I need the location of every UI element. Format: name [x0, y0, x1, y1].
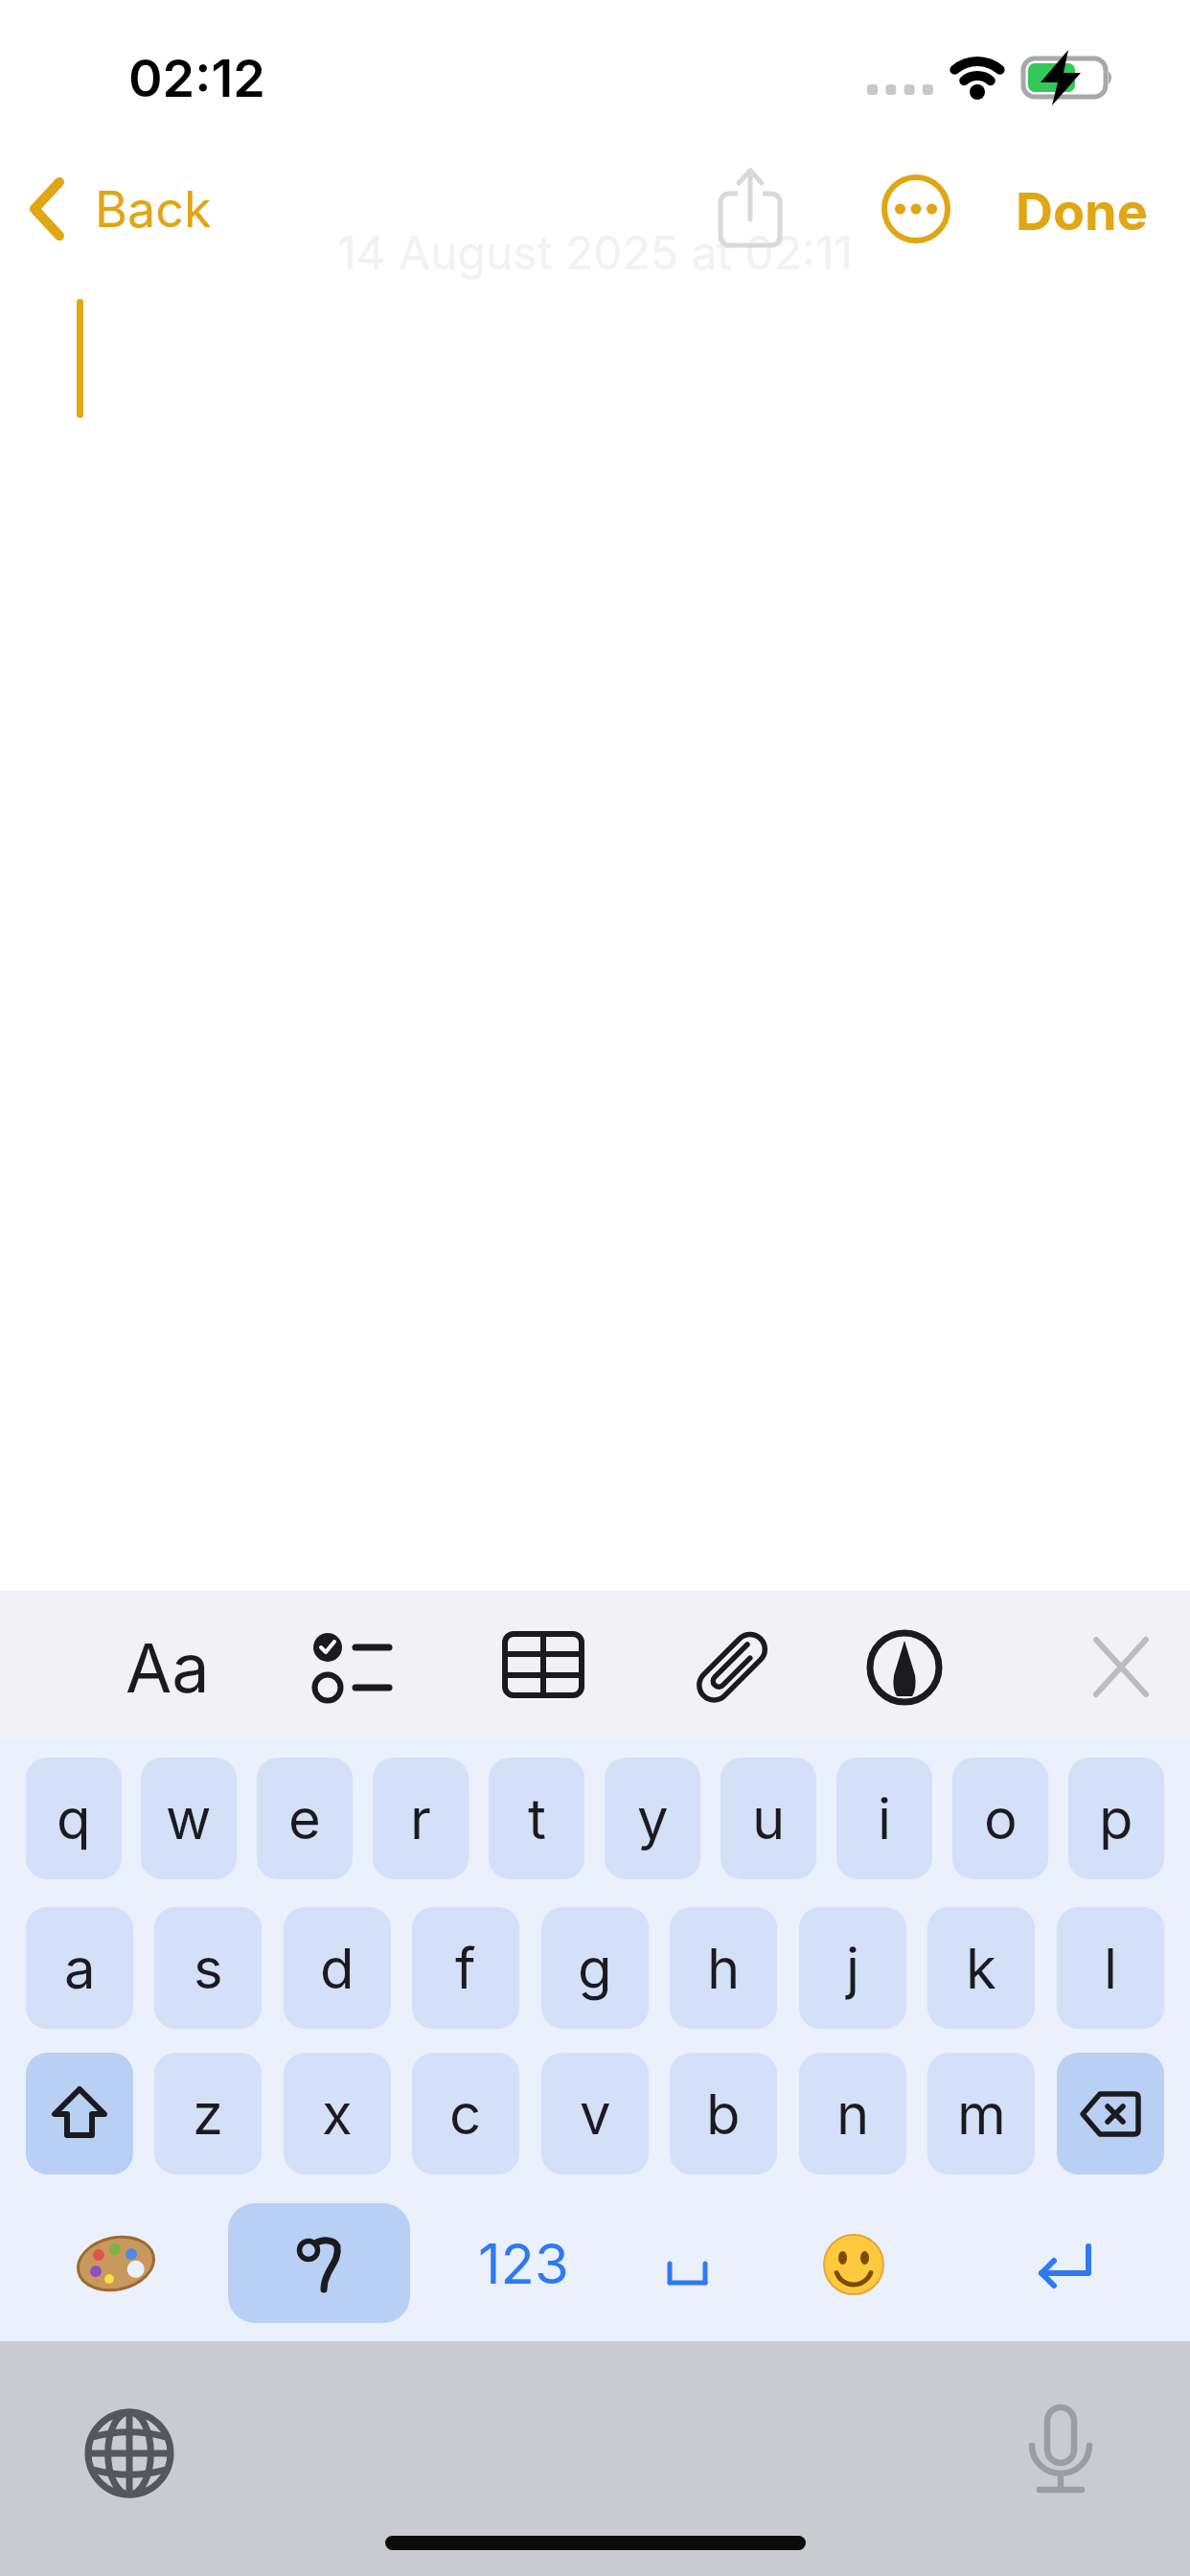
button[interactable]: [1016, 2227, 1115, 2302]
button[interactable]: [1057, 2053, 1164, 2174]
staticText: w: [166, 1785, 212, 1852]
staticText: f: [455, 1935, 476, 2002]
staticText: d: [320, 1935, 355, 2002]
button[interactable]: n: [799, 2053, 906, 2174]
button[interactable]: a: [26, 1907, 133, 2029]
button[interactable]: e: [257, 1758, 353, 1879]
staticText: k: [966, 1935, 996, 2002]
staticText: o: [984, 1785, 1018, 1852]
button[interactable]: m: [927, 2053, 1035, 2174]
staticText: q: [57, 1785, 91, 1852]
button[interactable]: Aa: [105, 1620, 230, 1715]
staticText: z: [193, 2081, 224, 2148]
button[interactable]: [26, 2053, 133, 2174]
button[interactable]: [75, 2231, 159, 2296]
staticText: s: [194, 1935, 223, 2002]
button[interactable]: i: [836, 1758, 932, 1879]
button[interactable]: w: [141, 1758, 237, 1879]
button[interactable]: [688, 1624, 774, 1711]
staticText: Done: [1016, 180, 1148, 242]
staticText: h: [707, 1935, 741, 2002]
button[interactable]: [1077, 1629, 1163, 1706]
button[interactable]: h: [670, 1907, 777, 2029]
button[interactable]: [1012, 2398, 1108, 2497]
staticText: y: [637, 1785, 669, 1852]
button[interactable]: [713, 165, 790, 253]
button[interactable]: y: [605, 1758, 700, 1879]
button[interactable]: b: [670, 2053, 777, 2174]
button[interactable]: [303, 1624, 404, 1711]
staticText: n: [836, 2081, 870, 2148]
button[interactable]: f: [412, 1907, 519, 2029]
button[interactable]: c: [412, 2053, 519, 2174]
button[interactable]: r: [373, 1758, 469, 1879]
button[interactable]: [81, 2405, 177, 2501]
button[interactable]: Done: [1004, 172, 1157, 245]
staticText: i: [878, 1785, 892, 1852]
button[interactable]: u: [721, 1758, 816, 1879]
button[interactable]: [502, 1629, 590, 1706]
staticText: u: [752, 1785, 786, 1852]
button[interactable]: d: [284, 1907, 391, 2029]
button[interactable]: [881, 173, 951, 244]
button[interactable]: 123: [446, 2214, 600, 2313]
button[interactable]: j: [799, 1907, 906, 2029]
staticText: 123: [478, 2230, 569, 2297]
staticText: 02:12: [128, 47, 265, 109]
staticText: 14 August 2025 at 02:11: [337, 224, 853, 280]
staticText: l: [1104, 1935, 1118, 2002]
staticText: c: [449, 2081, 482, 2148]
button[interactable]: g: [541, 1907, 649, 2029]
button[interactable]: [816, 2227, 891, 2302]
staticText: b: [706, 2081, 741, 2148]
button[interactable]: o: [952, 1758, 1048, 1879]
staticText: v: [580, 2081, 611, 2148]
button[interactable]: [862, 1625, 947, 1710]
button[interactable]: [632, 2233, 744, 2300]
staticText: x: [322, 2081, 353, 2148]
staticText: p: [1099, 1785, 1133, 1852]
button[interactable]: t: [489, 1758, 584, 1879]
staticText: Aa: [126, 1627, 210, 1709]
staticText: a: [64, 1935, 96, 2002]
staticText: e: [288, 1785, 321, 1852]
button[interactable]: l: [1057, 1907, 1164, 2029]
button[interactable]: x: [284, 2053, 391, 2174]
staticText: r: [410, 1785, 431, 1852]
button[interactable]: v: [541, 2053, 649, 2174]
staticText: g: [578, 1935, 612, 2002]
staticText: m: [957, 2081, 1006, 2148]
button[interactable]: z: [154, 2053, 262, 2174]
staticText: j: [846, 1935, 860, 2002]
button[interactable]: s: [154, 1907, 262, 2029]
button[interactable]: k: [927, 1907, 1035, 2029]
staticText: t: [528, 1785, 546, 1852]
button[interactable]: p: [1068, 1758, 1164, 1879]
staticText: Back: [95, 179, 212, 240]
button[interactable]: Back: [23, 171, 215, 247]
button[interactable]: q: [26, 1758, 122, 1879]
button[interactable]: [228, 2203, 410, 2323]
